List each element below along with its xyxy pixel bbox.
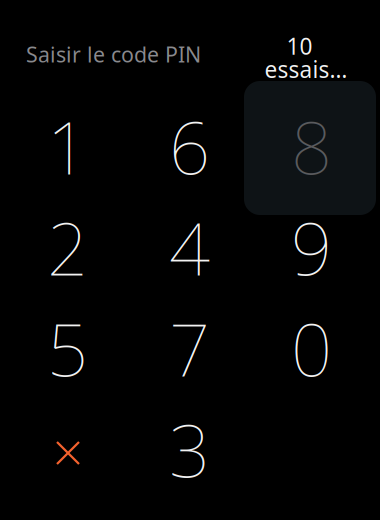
button[interactable]: 0 (250, 298, 372, 399)
staticText: 0 (291, 301, 332, 396)
staticText: 4 (169, 200, 210, 295)
staticText: 9 (291, 200, 332, 295)
button[interactable]: 4 (128, 197, 250, 298)
staticText: 8 (291, 99, 332, 194)
staticText: 2 (47, 200, 88, 295)
staticText: 1 (47, 99, 88, 194)
button[interactable]: 3 (128, 399, 250, 500)
staticText: 10 (286, 31, 312, 61)
button[interactable]: 8 (250, 96, 372, 197)
staticText: 6 (169, 99, 210, 194)
staticText: essais… (264, 54, 347, 84)
button[interactable]: 5 (6, 298, 128, 399)
button[interactable]: 2 (6, 197, 128, 298)
button[interactable]: 6 (128, 96, 250, 197)
button[interactable]: 9 (250, 197, 372, 298)
staticText: 7 (169, 301, 210, 396)
staticText: Saisir le code PIN (26, 40, 201, 68)
button[interactable]: Delete (6, 399, 128, 500)
button[interactable]: 7 (128, 298, 250, 399)
button[interactable]: 1 (6, 96, 128, 197)
staticText: 3 (169, 402, 210, 497)
staticText: 5 (47, 301, 88, 396)
